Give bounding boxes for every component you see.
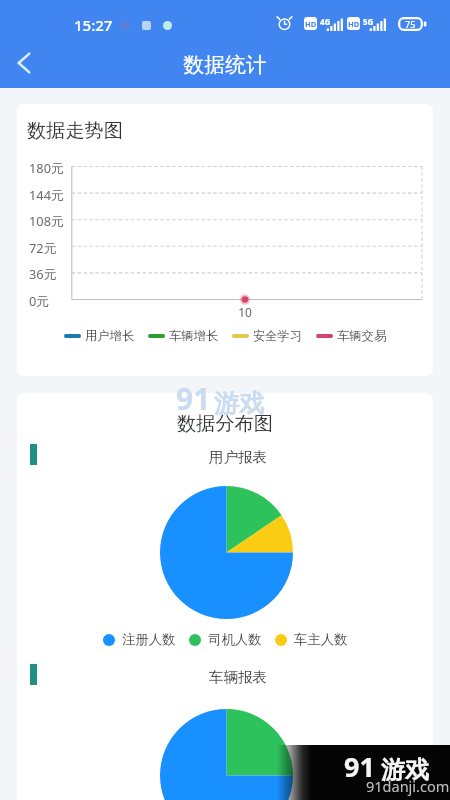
staticText: 10 (238, 304, 252, 320)
staticText: 司机人数 (208, 631, 262, 648)
staticText: 安全学习 (253, 328, 303, 343)
staticText: 用户增长 (85, 328, 135, 343)
staticText: 用户报表 (30, 448, 433, 466)
staticText: 91danji.com (366, 776, 450, 796)
staticText: 车辆增长 (169, 328, 219, 343)
staticText: 车主人数 (294, 631, 348, 648)
staticText: 15:27 (74, 15, 113, 35)
staticText: 数据走势图 (27, 119, 123, 143)
staticText: 车辆交易 (337, 328, 387, 343)
staticText: 游戏 (214, 388, 264, 419)
staticText: 108元 (29, 212, 64, 229)
staticText: 91 (344, 748, 375, 785)
staticText: 注册人数 (122, 631, 176, 648)
staticText: 4G (320, 16, 331, 27)
staticText: 72元 (29, 239, 57, 256)
staticText: 36元 (29, 265, 57, 282)
staticText: 144元 (29, 186, 64, 203)
staticText: 数据统计 (0, 52, 450, 88)
staticText: 5G (363, 16, 374, 27)
button[interactable]: Back (2, 41, 46, 85)
staticText: 0元 (29, 292, 50, 309)
staticText: 91 (176, 378, 211, 419)
staticText: 75 (405, 18, 416, 30)
staticText: 车辆报表 (30, 668, 433, 686)
staticText: 游戏 (381, 755, 429, 785)
staticText: 数据分布图 (17, 412, 433, 436)
staticText: HD (305, 19, 317, 29)
staticText: HD (348, 19, 360, 29)
staticText: 180元 (29, 159, 64, 176)
